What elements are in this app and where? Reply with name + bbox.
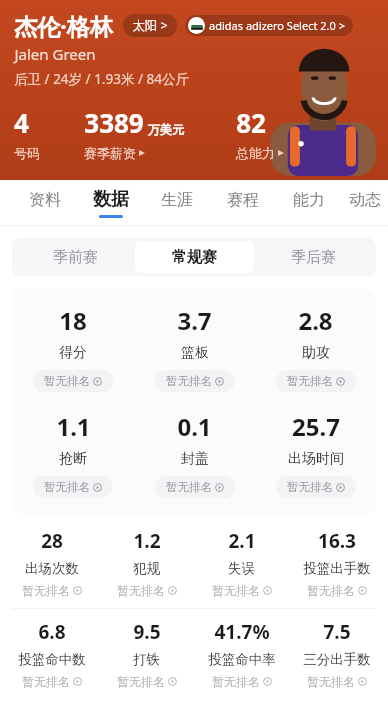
staticText: adidas adizero Select 2.0 >	[209, 18, 345, 33]
staticText: 暂无排名	[166, 480, 212, 494]
staticText: 4	[14, 105, 29, 140]
staticText: 暂无排名	[117, 674, 165, 689]
staticText: 动态	[349, 190, 381, 210]
staticText: 暂无排名	[287, 480, 333, 494]
staticText: 2.8	[298, 304, 333, 337]
staticText: 28	[41, 528, 63, 554]
button[interactable]: 常规赛	[135, 241, 254, 273]
staticText: 暂无排名	[44, 480, 90, 494]
staticText: 18	[59, 304, 87, 337]
staticText: 3389	[84, 105, 144, 140]
staticText: 暂无排名	[307, 583, 355, 598]
staticText: 16.3	[318, 528, 356, 554]
button[interactable]: 暂无排名	[22, 674, 82, 689]
staticText: 投篮命中数	[18, 651, 86, 668]
staticText: 犯规	[133, 560, 160, 577]
button[interactable]: 暂无排名	[307, 674, 367, 689]
staticText: 9.5	[133, 619, 161, 645]
button[interactable]: 1.1	[12, 410, 134, 498]
button[interactable]: 季前赛	[15, 241, 135, 273]
staticText: 赛季薪资	[84, 145, 136, 161]
button[interactable]: adidas adizero Select 2.0 >	[185, 15, 353, 36]
button[interactable]: 资料	[12, 180, 78, 226]
staticText: 得分	[59, 344, 87, 362]
staticText: 3.7	[177, 304, 212, 337]
button[interactable]: 动态	[342, 180, 388, 226]
button[interactable]: 0.1	[134, 410, 255, 498]
staticText: 三分出手数	[303, 651, 371, 668]
button[interactable]: 季后赛	[254, 241, 373, 273]
staticText: 暂无排名	[212, 583, 260, 598]
staticText: 出场时间	[288, 450, 344, 468]
button[interactable]: 暂无排名	[276, 370, 356, 392]
staticText: 暂无排名	[22, 583, 70, 598]
button[interactable]: 1.2	[99, 528, 194, 598]
staticText: 7.5	[323, 619, 351, 645]
button[interactable]: 4	[14, 105, 40, 161]
staticText: 封盖	[181, 450, 209, 468]
button[interactable]: 18	[12, 304, 134, 392]
staticText: 暂无排名	[166, 374, 212, 388]
button[interactable]: 暂无排名	[155, 476, 235, 498]
staticText: 赛程	[227, 190, 259, 210]
staticText: 能力	[293, 190, 325, 210]
staticText: 后卫 / 24岁 / 1.93米 / 84公斤	[14, 70, 189, 88]
button[interactable]: 41.7%	[194, 619, 289, 689]
staticText: 暂无排名	[212, 674, 260, 689]
button[interactable]: 暂无排名	[22, 583, 82, 598]
staticText: 暂无排名	[307, 674, 355, 689]
staticText: 1.1	[56, 410, 91, 443]
button[interactable]: 82	[236, 105, 284, 161]
button[interactable]: 能力	[276, 180, 342, 226]
button[interactable]: 数据	[78, 180, 144, 226]
staticText: 季前赛	[53, 248, 98, 267]
staticText: 万美元	[148, 122, 184, 137]
button[interactable]: 暂无排名	[117, 674, 177, 689]
staticText: 总能力	[236, 145, 275, 161]
button[interactable]: 2.8	[255, 304, 376, 392]
button[interactable]: 暂无排名	[155, 370, 235, 392]
button[interactable]: 暂无排名	[33, 370, 113, 392]
button[interactable]: 太阳 >	[123, 14, 177, 37]
staticText: Jalen Green	[14, 44, 96, 64]
staticText: 暂无排名	[44, 374, 90, 388]
button[interactable]: 16.3	[289, 528, 384, 598]
staticText: 投篮出手数	[303, 560, 371, 577]
staticText: 抢断	[59, 450, 87, 468]
button[interactable]: 暂无排名	[212, 583, 272, 598]
button[interactable]: 3.7	[134, 304, 255, 392]
staticText: 生涯	[161, 190, 193, 210]
button[interactable]: 生涯	[144, 180, 210, 226]
staticText: 82	[236, 105, 266, 140]
staticText: 1.2	[133, 528, 161, 554]
staticText: 暂无排名	[287, 374, 333, 388]
staticText: 暂无排名	[22, 674, 70, 689]
staticText: 太阳 >	[132, 17, 168, 34]
button[interactable]: 7.5	[289, 619, 384, 689]
button[interactable]: 暂无排名	[212, 674, 272, 689]
staticText: 号码	[14, 145, 40, 161]
button[interactable]: 暂无排名	[276, 476, 356, 498]
staticText: 2.1	[228, 528, 256, 554]
button[interactable]: 6.8	[4, 619, 99, 689]
staticText: 杰伦·格林	[14, 10, 113, 41]
staticText: 25.7	[292, 410, 340, 443]
staticText: 季后赛	[291, 248, 336, 267]
staticText: 41.7%	[214, 619, 270, 645]
button[interactable]: 暂无排名	[307, 583, 367, 598]
button[interactable]: 28	[4, 528, 99, 598]
button[interactable]: 暂无排名	[117, 583, 177, 598]
button[interactable]: 暂无排名	[33, 476, 113, 498]
staticText: 出场次数	[25, 560, 79, 577]
button[interactable]: 赛程	[210, 180, 276, 226]
button[interactable]: 9.5	[99, 619, 194, 689]
staticText: 资料	[29, 190, 61, 210]
staticText: 6.8	[38, 619, 66, 645]
staticText: 失误	[228, 560, 255, 577]
button[interactable]: 3389	[84, 105, 184, 161]
button[interactable]: 25.7	[255, 410, 376, 498]
button[interactable]: 2.1	[194, 528, 289, 598]
staticText: 暂无排名	[117, 583, 165, 598]
staticText: 助攻	[302, 344, 330, 362]
staticText: 数据	[93, 188, 129, 211]
